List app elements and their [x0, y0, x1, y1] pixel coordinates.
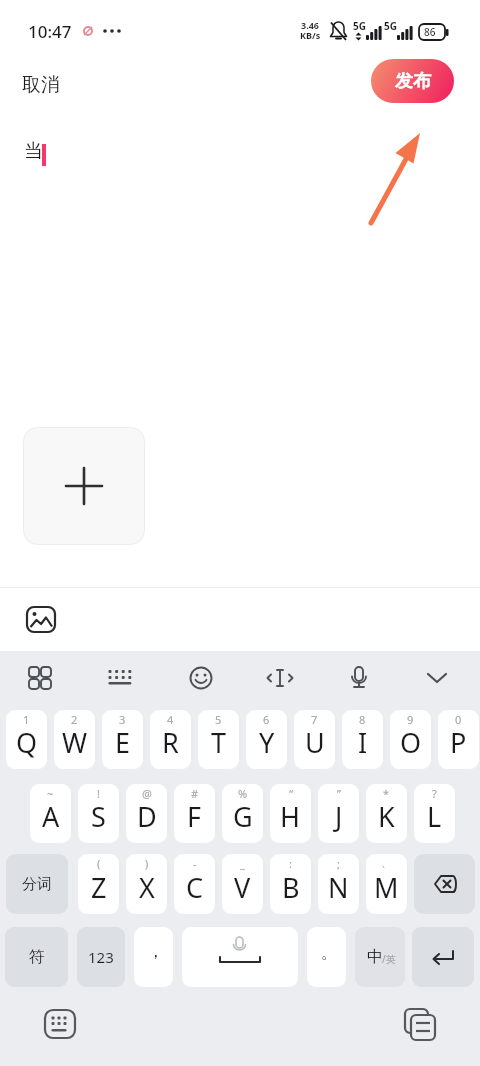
- button[interactable]: %: [222, 784, 263, 843]
- staticText: I: [358, 724, 368, 761]
- button[interactable]: 3: [102, 710, 143, 769]
- button[interactable]: ”: [318, 784, 359, 843]
- button[interactable]: #: [174, 784, 215, 843]
- staticText: 1: [23, 712, 30, 727]
- button[interactable]: 符: [5, 927, 68, 987]
- staticText: (: [97, 856, 101, 871]
- button[interactable]: 2: [54, 710, 95, 769]
- staticText: 当: [24, 139, 43, 163]
- button[interactable]: 取消: [22, 73, 60, 97]
- button[interactable]: !: [78, 784, 119, 843]
- staticText: -: [193, 856, 197, 871]
- button[interactable]: 中: [355, 927, 405, 987]
- button[interactable]: ~: [30, 784, 71, 843]
- button[interactable]: [182, 927, 298, 987]
- staticText: N: [328, 869, 349, 906]
- staticText: H: [280, 798, 301, 835]
- button[interactable]: ): [126, 854, 167, 914]
- staticText: ，: [147, 941, 164, 962]
- staticText: 符: [29, 947, 45, 967]
- button[interactable]: -: [174, 854, 215, 914]
- button[interactable]: [398, 1002, 444, 1046]
- button[interactable]: [412, 927, 474, 987]
- button[interactable]: [23, 427, 145, 545]
- staticText: 4: [167, 712, 174, 727]
- button[interactable]: [20, 658, 60, 698]
- button[interactable]: 7: [294, 710, 335, 769]
- staticText: W: [62, 724, 88, 761]
- staticText: %: [238, 786, 248, 801]
- button[interactable]: 9: [390, 710, 431, 769]
- button[interactable]: (: [78, 854, 119, 914]
- staticText: 6: [263, 712, 270, 727]
- staticText: J: [335, 798, 343, 835]
- button[interactable]: 1: [6, 710, 47, 769]
- button[interactable]: [22, 600, 60, 638]
- button[interactable]: 、: [366, 854, 407, 914]
- staticText: 8: [359, 712, 366, 727]
- button[interactable]: ?: [414, 784, 455, 843]
- staticText: B: [282, 869, 300, 906]
- staticText: 5G: [384, 19, 397, 33]
- staticText: E: [115, 724, 131, 761]
- staticText: *: [383, 786, 390, 801]
- staticText: K: [378, 798, 395, 835]
- button[interactable]: ，: [134, 927, 173, 987]
- button[interactable]: 。: [307, 927, 346, 987]
- staticText: !: [97, 786, 100, 801]
- button[interactable]: 5: [198, 710, 239, 769]
- button[interactable]: [417, 658, 457, 698]
- staticText: P: [450, 724, 467, 761]
- button[interactable]: @: [126, 784, 167, 843]
- staticText: ;: [337, 856, 340, 871]
- staticText: Z: [91, 869, 107, 906]
- staticText: R: [162, 724, 179, 761]
- staticText: 分词: [22, 875, 52, 894]
- staticText: 、: [381, 856, 392, 870]
- staticText: :: [289, 856, 292, 871]
- staticText: 7: [311, 712, 318, 727]
- staticText: ): [145, 856, 149, 871]
- staticText: C: [186, 869, 204, 906]
- staticText: 2: [71, 712, 78, 727]
- button[interactable]: [339, 658, 379, 698]
- staticText: S: [91, 798, 106, 835]
- button[interactable]: ;: [318, 854, 359, 914]
- staticText: V: [234, 869, 251, 906]
- button[interactable]: 4: [150, 710, 191, 769]
- staticText: _: [240, 856, 245, 871]
- staticText: 3.46: [301, 19, 319, 31]
- staticText: A: [42, 798, 60, 835]
- staticText: 0: [455, 712, 462, 727]
- button[interactable]: 8: [342, 710, 383, 769]
- staticText: 发布: [395, 70, 431, 93]
- button[interactable]: 123: [77, 927, 125, 987]
- staticText: ”: [337, 786, 341, 801]
- button[interactable]: 分词: [6, 854, 68, 914]
- button[interactable]: [414, 854, 475, 914]
- staticText: 123: [88, 947, 114, 967]
- staticText: D: [137, 798, 157, 835]
- button[interactable]: 0: [438, 710, 479, 769]
- button[interactable]: 6: [246, 710, 287, 769]
- staticText: “: [289, 786, 293, 801]
- staticText: ?: [432, 786, 437, 801]
- button[interactable]: 发布: [371, 59, 454, 103]
- staticText: 5G: [353, 19, 366, 33]
- button[interactable]: [260, 658, 300, 698]
- staticText: 中: [367, 947, 383, 967]
- button[interactable]: :: [270, 854, 311, 914]
- button[interactable]: [37, 1002, 83, 1046]
- button[interactable]: [181, 658, 221, 698]
- staticText: KB/s: [300, 29, 321, 41]
- staticText: F: [187, 798, 202, 835]
- staticText: L: [427, 798, 442, 835]
- staticText: 取消: [22, 73, 60, 97]
- staticText: T: [211, 724, 227, 761]
- staticText: 5: [215, 712, 222, 727]
- button[interactable]: “: [270, 784, 311, 843]
- button[interactable]: [100, 658, 140, 698]
- staticText: G: [233, 798, 253, 835]
- button[interactable]: *: [366, 784, 407, 843]
- button[interactable]: _: [222, 854, 263, 914]
